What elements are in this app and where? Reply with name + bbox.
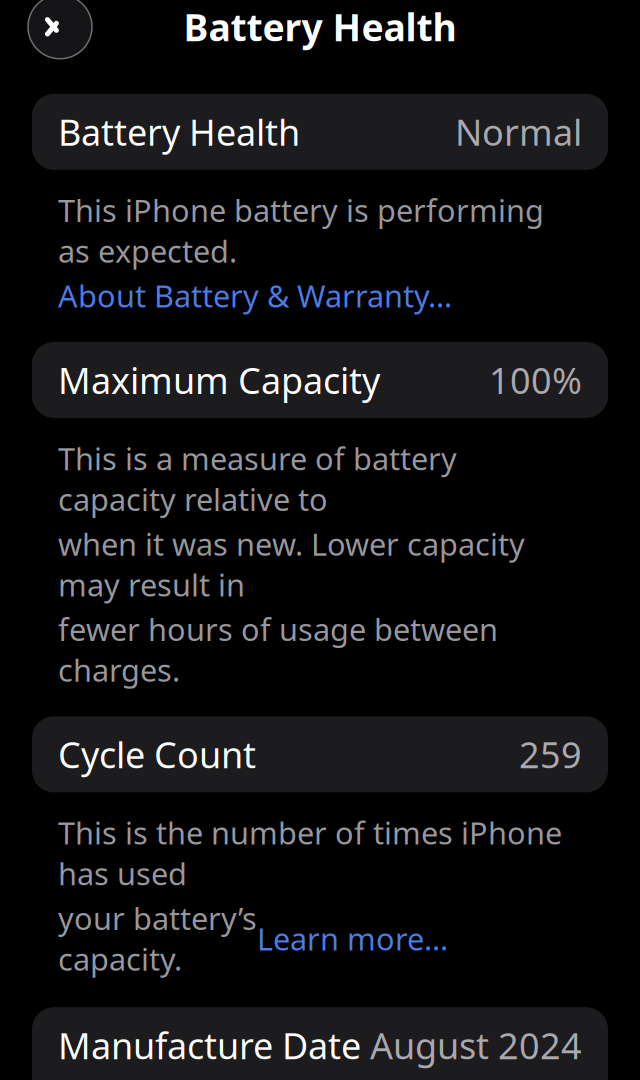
button[interactable]: Back bbox=[28, 0, 92, 59]
staticText: About Battery & Warranty... bbox=[58, 275, 452, 316]
staticText: Learn more... bbox=[257, 918, 448, 959]
staticText: Manufacture Date bbox=[58, 1021, 361, 1069]
staticText: Battery Health bbox=[58, 108, 300, 156]
staticText: This iPhone battery is performing as exp… bbox=[58, 190, 544, 271]
staticText: Cycle Count bbox=[58, 730, 256, 778]
staticText: August 2024 bbox=[370, 1021, 582, 1069]
button[interactable]: Cycle Count bbox=[32, 716, 608, 792]
staticText: when it was new. Lower capacity may resu… bbox=[58, 523, 525, 605]
staticText: your battery’s capacity. bbox=[58, 898, 257, 979]
button[interactable]: Manufacture Date bbox=[32, 1007, 608, 1080]
staticText: This is the number of times iPhone has u… bbox=[58, 812, 562, 894]
button[interactable]: Learn more... bbox=[257, 918, 448, 959]
button[interactable]: Maximum Capacity bbox=[32, 342, 608, 418]
staticText: Battery Health bbox=[183, 2, 456, 52]
staticText: 259 bbox=[519, 730, 582, 778]
staticText: fewer hours of usage between charges. bbox=[58, 609, 498, 690]
staticText: 100% bbox=[489, 356, 582, 404]
staticText: Normal bbox=[455, 108, 582, 156]
button[interactable]: Battery Health bbox=[32, 94, 608, 170]
staticText: This is a measure of battery capacity re… bbox=[58, 438, 457, 519]
staticText: Maximum Capacity bbox=[58, 356, 380, 404]
button[interactable]: About Battery & Warranty... bbox=[58, 275, 452, 316]
